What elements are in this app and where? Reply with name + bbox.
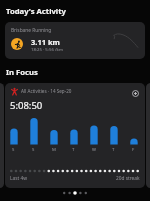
staticText: Last 4w <box>10 175 27 182</box>
staticText: W <box>92 146 96 152</box>
staticText: All Activities · 14 Sep-20 <box>21 88 72 94</box>
staticText: 18:25 · 5:56 /km <box>31 46 63 52</box>
staticText: T <box>72 146 75 152</box>
staticText: Brisbane Running <box>11 27 52 34</box>
staticText: 5:08:50 <box>10 99 43 112</box>
staticText: 20d streak <box>116 175 140 182</box>
staticText: M <box>52 146 56 152</box>
staticText: S <box>32 146 35 152</box>
staticText: T <box>112 146 115 152</box>
staticText: 3.11 km <box>31 37 60 47</box>
staticText: S <box>12 146 15 152</box>
button[interactable]: Add activity <box>129 87 141 99</box>
button[interactable]: Brisbane Running <box>5 22 145 59</box>
staticText: F <box>132 146 135 152</box>
staticText: In Focus <box>6 67 38 77</box>
staticText: Today's Activity <box>6 6 66 16</box>
